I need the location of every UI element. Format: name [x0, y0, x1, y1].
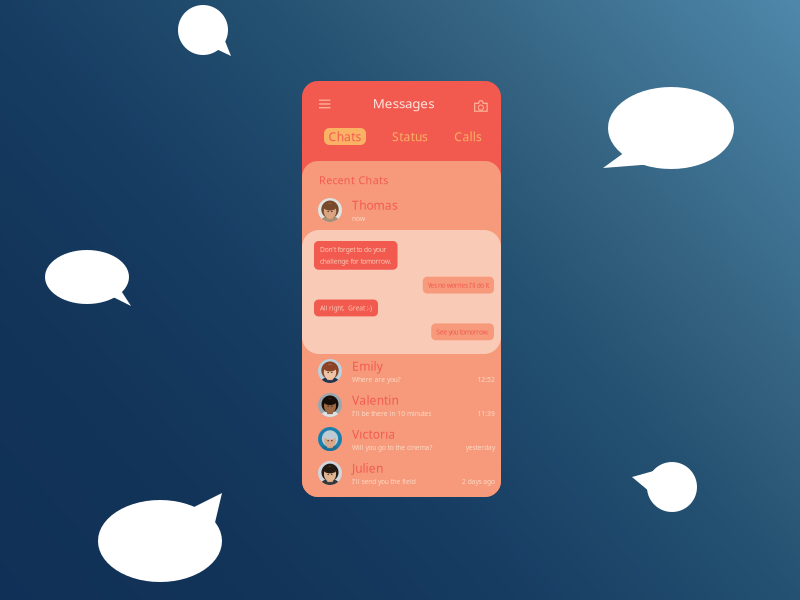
staticText: Valentin — [352, 392, 398, 408]
button[interactable]: All right. Great :-) — [314, 300, 378, 316]
button[interactable]: Emily — [302, 354, 501, 388]
staticText: Where are you? — [352, 375, 401, 384]
staticText: Thomas — [352, 197, 398, 213]
staticText: Emily — [352, 358, 383, 374]
button[interactable]: Status — [392, 128, 428, 145]
staticText: Recent Chats — [319, 173, 388, 187]
staticText: I'll send you the field — [352, 477, 416, 486]
button[interactable]: Thomas — [302, 187, 501, 223]
staticText: Chats — [329, 128, 361, 144]
button[interactable]: See you tomorrow. — [431, 323, 494, 340]
button[interactable]: Menu — [319, 92, 343, 116]
staticText: I'll be there in 10 minutes — [352, 409, 431, 418]
staticText: Calls — [454, 128, 482, 144]
staticText: Messages — [373, 94, 434, 112]
staticText: 12:52 — [477, 375, 495, 384]
staticText: Yes no worries I'll do it — [428, 281, 489, 290]
staticText: Victoria — [352, 426, 395, 442]
staticText: Julien — [352, 460, 383, 476]
button[interactable]: Don't forget to do your challenge for to… — [314, 241, 397, 270]
button[interactable]: Camera — [464, 92, 488, 116]
staticText: Don't forget to do your challenge for to… — [320, 245, 391, 266]
staticText: All right. Great :-) — [320, 304, 372, 312]
button[interactable]: Yes no worries I'll do it — [423, 277, 494, 294]
staticText: now — [352, 214, 365, 223]
staticText: yesterday — [466, 443, 495, 452]
staticText: Status — [392, 128, 428, 144]
button[interactable]: Victoria — [302, 422, 501, 456]
button[interactable]: Calls — [454, 128, 482, 145]
staticText: Will you go to the cinema? — [352, 443, 432, 452]
button[interactable]: Valentin — [302, 388, 501, 422]
staticText: See you tomorrow. — [436, 327, 489, 336]
button[interactable]: Julien — [302, 456, 501, 490]
staticText: 2 days ago — [462, 477, 495, 486]
button[interactable]: Chats — [324, 128, 366, 145]
staticText: 11:39 — [477, 409, 495, 418]
